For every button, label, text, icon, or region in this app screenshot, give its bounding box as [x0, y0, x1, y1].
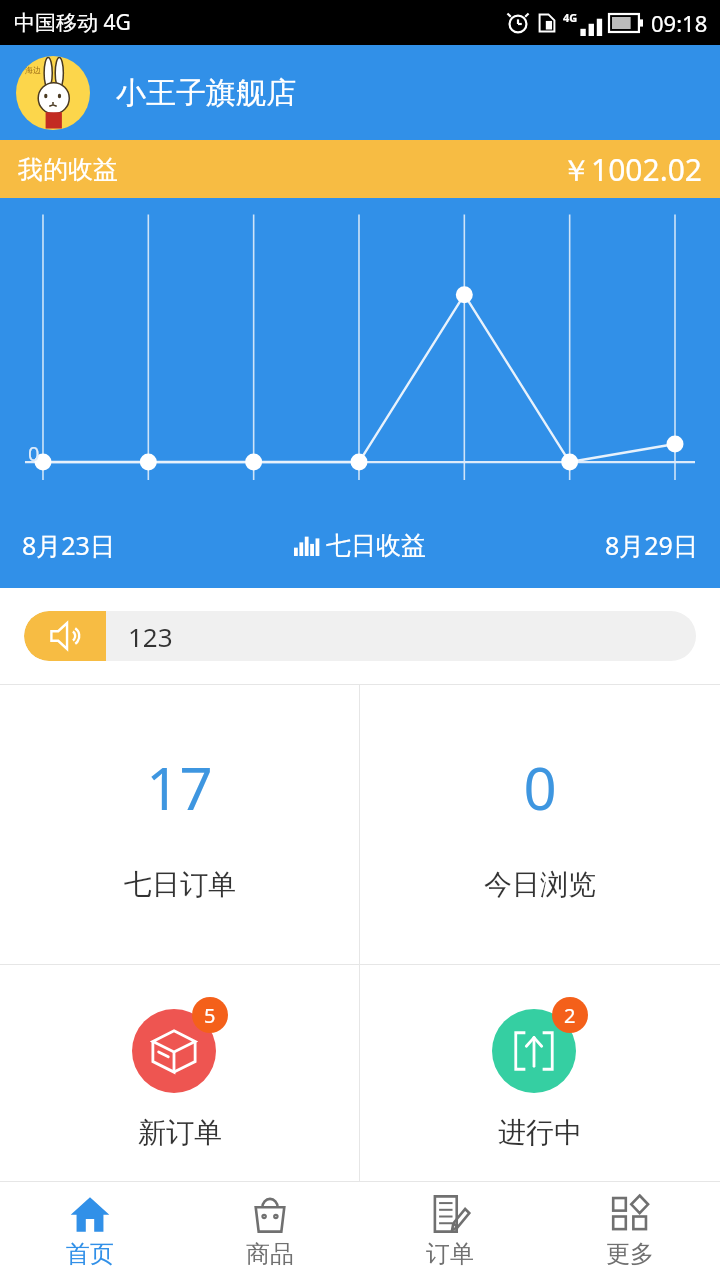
staticText: 0	[28, 440, 40, 467]
staticText: 首页	[66, 1239, 114, 1269]
staticText: 09:18	[651, 8, 708, 38]
button[interactable]: 我的收益	[0, 140, 720, 198]
staticText: 8月29日	[605, 528, 698, 562]
staticText: ￥1002.02	[561, 149, 702, 190]
staticText: 今日浏览	[484, 867, 596, 902]
button[interactable]: 进行中	[360, 965, 720, 1181]
other: 新订单	[132, 1009, 216, 1093]
staticText: 中国移动 4G	[14, 8, 131, 37]
other: Announcement	[24, 611, 106, 661]
staticText: 七日订单	[124, 867, 236, 902]
button[interactable]: 新订单	[0, 965, 359, 1181]
staticText: 七日收益	[326, 530, 426, 561]
button[interactable]: Announcement	[24, 611, 696, 661]
staticText: 商品	[246, 1239, 294, 1269]
staticText: 订单	[426, 1239, 474, 1269]
other: 进行中	[492, 1009, 576, 1093]
staticText: 0	[523, 748, 557, 827]
staticText: 2	[564, 1002, 576, 1029]
button[interactable]: 首页	[0, 1182, 180, 1280]
staticText: 小王子旗舰店	[116, 74, 296, 112]
button[interactable]: 0	[360, 685, 720, 964]
button[interactable]: 商品	[180, 1182, 360, 1280]
staticText: 17	[146, 748, 213, 827]
button[interactable]: 订单	[360, 1182, 540, 1280]
staticText: 海边	[25, 65, 41, 75]
staticText: 5	[204, 1002, 216, 1029]
staticText: 进行中	[498, 1115, 582, 1150]
staticText: 新订单	[138, 1115, 222, 1150]
staticText: 4G	[563, 10, 578, 25]
button[interactable]: 17	[0, 685, 359, 964]
staticText: 8月23日	[22, 528, 115, 562]
staticText: 我的收益	[18, 154, 118, 185]
staticText: 更多	[606, 1239, 654, 1269]
staticText: 123	[128, 619, 173, 654]
button[interactable]: 更多	[540, 1182, 720, 1280]
